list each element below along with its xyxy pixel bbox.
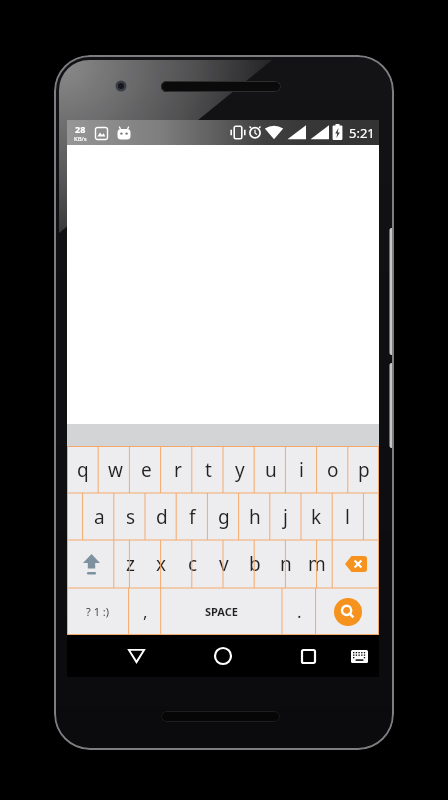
button[interactable]: r bbox=[162, 446, 193, 493]
staticText: h bbox=[249, 504, 261, 530]
staticText: z bbox=[126, 551, 135, 577]
button[interactable] bbox=[209, 642, 237, 670]
staticText: x bbox=[156, 551, 167, 577]
staticText: p bbox=[358, 457, 370, 483]
staticText: q bbox=[77, 457, 89, 483]
staticText: u bbox=[265, 457, 277, 483]
staticText: . bbox=[297, 600, 302, 623]
button[interactable]: . bbox=[282, 588, 316, 635]
staticText: KB/s bbox=[74, 135, 87, 143]
button[interactable]: z bbox=[115, 540, 146, 588]
button[interactable]: b bbox=[239, 540, 270, 588]
button[interactable] bbox=[316, 588, 379, 635]
button[interactable] bbox=[294, 642, 322, 670]
button[interactable]: v bbox=[208, 540, 239, 588]
button[interactable] bbox=[347, 644, 371, 668]
staticText: , bbox=[143, 600, 148, 623]
staticText: SPACE bbox=[205, 604, 238, 619]
staticText: t bbox=[205, 457, 212, 483]
button[interactable]: h bbox=[239, 493, 270, 540]
button[interactable]: n bbox=[270, 540, 301, 588]
staticText: n bbox=[280, 551, 292, 577]
staticText: s bbox=[126, 504, 136, 530]
button[interactable] bbox=[67, 540, 115, 588]
staticText: v bbox=[219, 551, 229, 577]
staticText: l bbox=[345, 504, 350, 530]
staticText: y bbox=[235, 457, 245, 483]
staticText: a bbox=[94, 504, 105, 530]
button[interactable]: c bbox=[177, 540, 208, 588]
button[interactable]: l bbox=[332, 493, 363, 540]
staticText: j bbox=[283, 504, 288, 530]
button[interactable]: j bbox=[270, 493, 301, 540]
staticText: e bbox=[141, 457, 152, 483]
staticText: 5:21 bbox=[349, 124, 375, 142]
button[interactable]: f bbox=[177, 493, 208, 540]
staticText: w bbox=[108, 457, 123, 483]
staticText: o bbox=[327, 457, 339, 483]
button[interactable]: a bbox=[84, 493, 115, 540]
staticText: 28 bbox=[75, 123, 86, 135]
staticText: ? 1 :) bbox=[86, 604, 110, 619]
button[interactable] bbox=[332, 540, 379, 588]
staticText: g bbox=[218, 504, 230, 530]
button[interactable]: SPACE bbox=[161, 588, 282, 635]
button[interactable]: k bbox=[301, 493, 332, 540]
button[interactable]: p bbox=[348, 446, 379, 493]
button[interactable]: u bbox=[255, 446, 286, 493]
button[interactable]: , bbox=[129, 588, 161, 635]
button[interactable]: e bbox=[131, 446, 162, 493]
button[interactable]: m bbox=[301, 540, 332, 588]
button[interactable]: d bbox=[146, 493, 177, 540]
button[interactable]: o bbox=[317, 446, 348, 493]
staticText: c bbox=[188, 551, 198, 577]
button[interactable]: y bbox=[224, 446, 255, 493]
button[interactable]: s bbox=[115, 493, 146, 540]
staticText: i bbox=[299, 457, 304, 483]
button[interactable]: g bbox=[208, 493, 239, 540]
staticText: k bbox=[311, 504, 322, 530]
button[interactable]: w bbox=[99, 446, 131, 493]
staticText: f bbox=[189, 504, 196, 530]
staticText: m bbox=[308, 551, 326, 577]
staticText: d bbox=[156, 504, 168, 530]
button[interactable]: q bbox=[67, 446, 99, 493]
button[interactable]: x bbox=[146, 540, 177, 588]
button[interactable]: i bbox=[286, 446, 317, 493]
button[interactable]: ? 1 :) bbox=[67, 588, 129, 635]
staticText: r bbox=[174, 457, 182, 483]
button[interactable] bbox=[122, 642, 150, 670]
staticText: b bbox=[249, 551, 261, 577]
button[interactable]: t bbox=[193, 446, 224, 493]
